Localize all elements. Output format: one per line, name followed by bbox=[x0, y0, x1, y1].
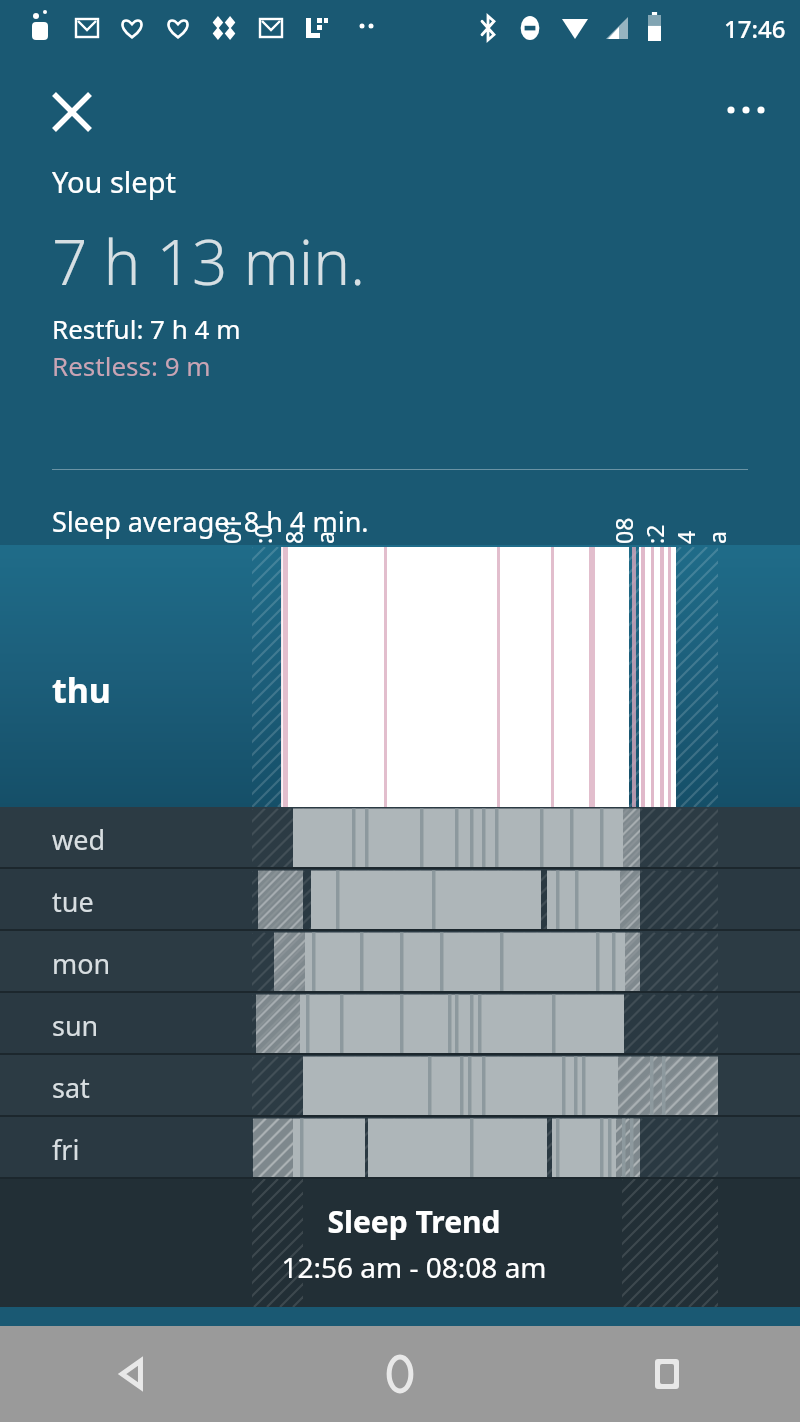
staticText: sat bbox=[52, 1069, 90, 1106]
staticText: thu bbox=[52, 667, 111, 713]
staticText: You slept bbox=[52, 162, 177, 201]
button[interactable]: Recents bbox=[533, 1326, 800, 1422]
staticText: 7 h 13 min. bbox=[52, 219, 366, 303]
staticText: 12:56 am - 08:08 am bbox=[281, 1248, 547, 1286]
button[interactable]: sat bbox=[0, 1055, 800, 1117]
button[interactable]: tue bbox=[0, 869, 800, 931]
staticText: Sleep Trend bbox=[327, 1201, 501, 1242]
staticText: mon bbox=[52, 945, 111, 982]
button[interactable]: Sleep Trend bbox=[0, 1179, 800, 1307]
staticText: Restful: 7 h 4 m bbox=[52, 311, 241, 346]
button[interactable]: Home bbox=[266, 1326, 533, 1422]
staticText: Restless: 9 m bbox=[52, 348, 211, 383]
staticText: sun bbox=[52, 1007, 99, 1044]
button[interactable]: More options bbox=[714, 78, 778, 142]
button[interactable]: Close bbox=[36, 76, 108, 148]
staticText: wed bbox=[52, 821, 106, 858]
button[interactable]: sun bbox=[0, 993, 800, 1055]
staticText: 08:24 am bbox=[608, 514, 738, 544]
button[interactable]: wed bbox=[0, 807, 800, 869]
staticText: 01:08 am bbox=[216, 514, 346, 544]
button[interactable]: fri bbox=[0, 1117, 800, 1179]
staticText: tue bbox=[52, 883, 94, 920]
staticText: fri bbox=[52, 1131, 80, 1168]
button[interactable]: Back bbox=[0, 1326, 266, 1422]
staticText: Sleep average: 8 h 4 min. bbox=[52, 503, 369, 540]
button[interactable]: thu bbox=[0, 545, 800, 807]
staticText: 17:46 bbox=[724, 12, 786, 45]
button[interactable]: mon bbox=[0, 931, 800, 993]
